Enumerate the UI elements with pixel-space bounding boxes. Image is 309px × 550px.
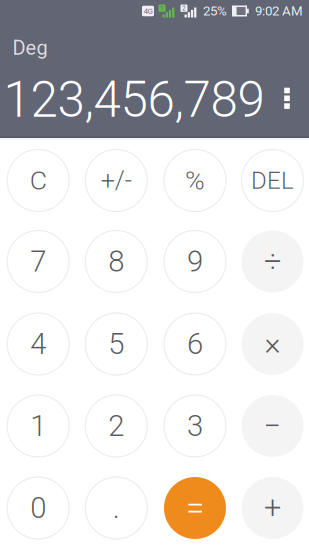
button[interactable]: ÷: [241, 230, 303, 292]
button[interactable]: 9: [164, 230, 226, 292]
button[interactable]: −: [241, 395, 303, 457]
staticText: +/-: [101, 166, 132, 195]
button[interactable]: ×: [241, 313, 303, 375]
button[interactable]: 7: [7, 230, 69, 292]
staticText: 1: [30, 409, 46, 443]
staticText: .: [113, 491, 120, 525]
staticText: 2: [108, 409, 124, 443]
button[interactable]: 2: [85, 395, 147, 457]
staticText: −: [263, 408, 281, 444]
button[interactable]: 3: [164, 395, 226, 457]
button[interactable]: 1: [7, 395, 69, 457]
staticText: 7: [30, 244, 46, 279]
button[interactable]: More options: [272, 76, 302, 121]
button[interactable]: +/-: [85, 149, 147, 211]
button[interactable]: %: [164, 149, 226, 211]
staticText: 4G: [143, 6, 152, 16]
staticText: Deg: [12, 36, 47, 60]
button[interactable]: C: [7, 149, 69, 211]
staticText: 123,456,789: [3, 71, 264, 129]
button[interactable]: DEL: [241, 149, 303, 211]
staticText: 25%: [203, 3, 227, 19]
staticText: 9: [187, 244, 203, 279]
staticText: 4: [30, 327, 46, 361]
button[interactable]: 4: [7, 313, 69, 375]
button[interactable]: 0: [7, 477, 69, 539]
staticText: =: [186, 488, 204, 528]
staticText: %: [185, 165, 205, 196]
button[interactable]: +: [241, 477, 303, 539]
staticText: 2: [182, 4, 186, 12]
button[interactable]: 8: [85, 230, 147, 292]
staticText: DEL: [251, 166, 294, 194]
staticText: 6: [187, 327, 203, 361]
staticText: ×: [264, 326, 280, 362]
button[interactable]: =: [164, 477, 226, 539]
button[interactable]: 6: [164, 313, 226, 375]
button[interactable]: 5: [85, 313, 147, 375]
staticText: 8: [108, 244, 124, 279]
button[interactable]: .: [85, 477, 147, 539]
staticText: 9:02 AM: [255, 3, 303, 19]
staticText: 1: [160, 4, 164, 12]
staticText: +: [264, 490, 281, 526]
staticText: ÷: [264, 243, 281, 279]
staticText: 5: [108, 327, 124, 361]
staticText: C: [30, 165, 47, 196]
staticText: 0: [30, 491, 46, 525]
staticText: 3: [187, 409, 203, 443]
